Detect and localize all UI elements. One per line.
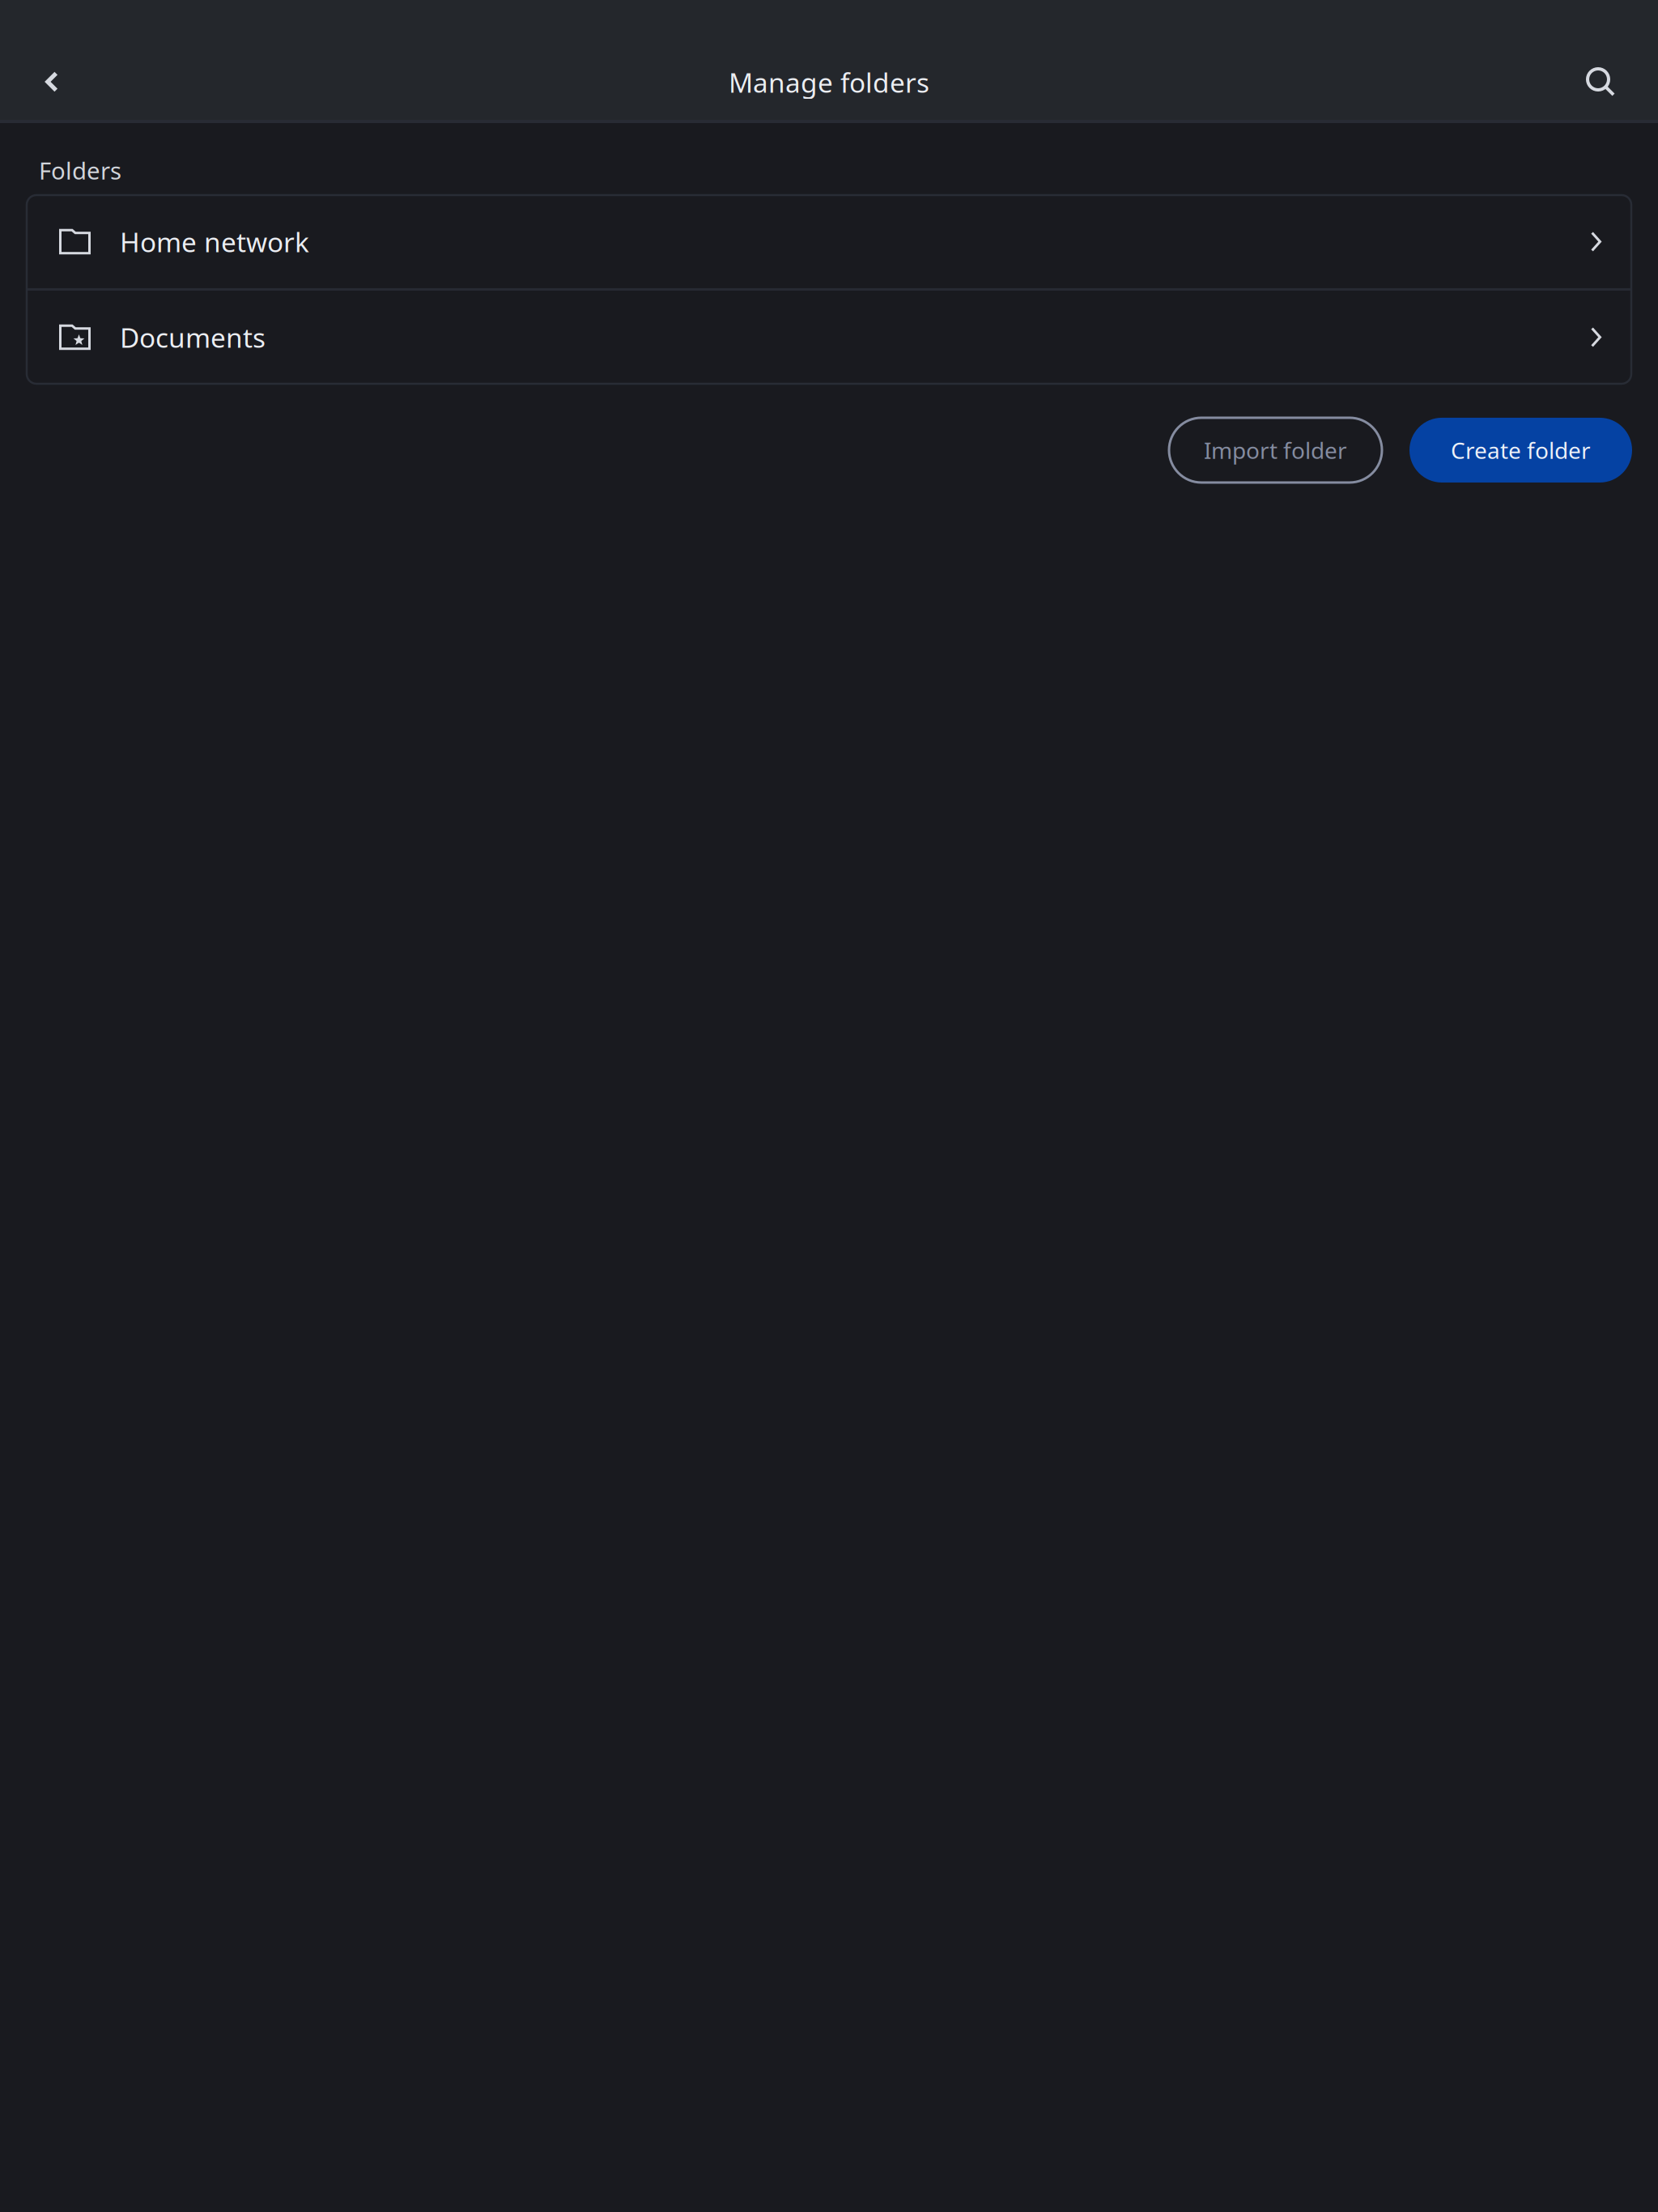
button[interactable]: Back xyxy=(14,44,90,120)
staticText: Import folder xyxy=(1204,435,1347,465)
button[interactable]: Search xyxy=(1562,44,1639,120)
button[interactable]: Import folder xyxy=(1169,418,1382,483)
button[interactable]: Documents xyxy=(27,291,1631,384)
staticText: Documents xyxy=(120,319,266,355)
button[interactable]: Create folder xyxy=(1409,418,1632,483)
staticText: Home network xyxy=(120,224,309,260)
staticText: Create folder xyxy=(1451,435,1591,465)
staticText: Manage folders xyxy=(729,64,929,100)
button[interactable]: Home network xyxy=(27,195,1631,288)
staticText: Folders xyxy=(39,155,121,186)
